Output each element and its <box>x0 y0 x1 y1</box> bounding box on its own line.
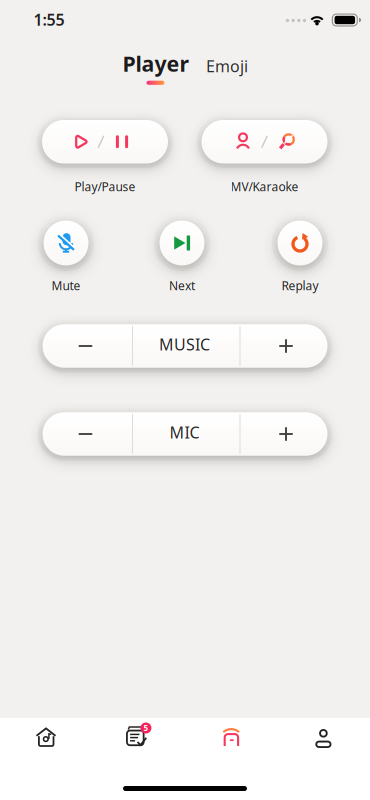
button[interactable]: MUSIC <box>134 318 234 370</box>
staticText: Emoji <box>206 55 248 77</box>
staticText: 5 <box>143 723 148 733</box>
button[interactable]: MV or Karaoke <box>197 115 332 168</box>
button[interactable]: MIC <box>134 406 234 458</box>
staticText: Mute <box>51 277 80 293</box>
button[interactable]: Player <box>196 712 266 762</box>
staticText: MUSIC <box>159 334 210 355</box>
staticText: Replay <box>281 277 318 293</box>
button[interactable]: Replay <box>272 215 328 271</box>
staticText: Next <box>169 277 195 293</box>
button[interactable]: Player <box>118 50 194 94</box>
staticText: MIC <box>169 422 199 443</box>
button[interactable]: Mic volume down <box>40 408 130 460</box>
button[interactable]: Mute <box>38 215 94 271</box>
staticText: Play/Pause <box>74 178 135 194</box>
button[interactable]: Emoji <box>200 46 254 86</box>
button[interactable]: Mic volume up <box>241 408 331 460</box>
staticText: MV/Karaoke <box>230 178 298 194</box>
staticText: 1:55 <box>33 9 64 30</box>
button[interactable]: Music volume down <box>40 320 130 372</box>
button[interactable]: Play or Pause <box>37 115 172 168</box>
button[interactable]: Next <box>154 215 210 271</box>
staticText: Player <box>122 49 189 78</box>
button[interactable]: Song list <box>102 712 172 762</box>
button[interactable]: Music volume up <box>241 320 331 372</box>
button[interactable]: Profile <box>288 713 358 763</box>
button[interactable]: Home <box>11 712 81 762</box>
